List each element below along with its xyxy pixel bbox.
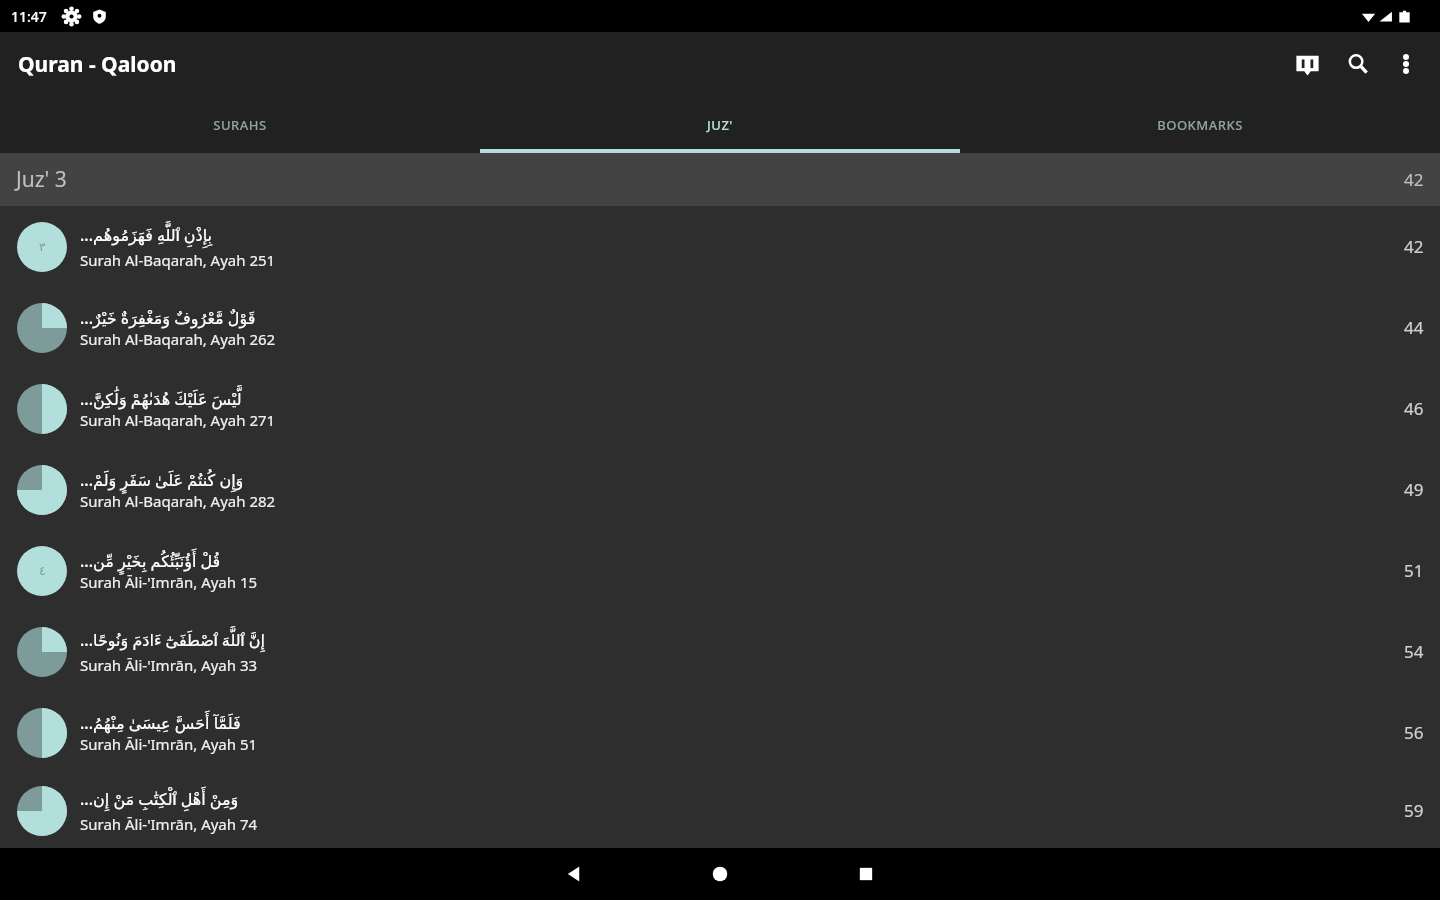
staticText: ...لَّيْسَ عَلَيْكَ هُدَىٰهُمْ وَلَٰكِنَ… [80, 388, 242, 410]
staticText: ...فَلَمَّآ أَحَسَّ عِيسَىٰ مِنْهُمُ [80, 712, 241, 734]
staticText: ...قُلْ أَؤُنَبِّئُكُم بِخَيْرٍ مِّن [80, 550, 221, 572]
button[interactable]: Search [1334, 40, 1382, 88]
staticText: JUZ' [707, 116, 733, 134]
staticText: BOOKMARKS [1157, 116, 1243, 134]
button[interactable]: ...فَلَمَّآ أَحَسَّ عِيسَىٰ مِنْهُمُ [0, 692, 1440, 773]
button[interactable]: Juz' 3 [0, 153, 1440, 206]
staticText: 46 [1404, 397, 1424, 420]
button[interactable]: ٤ [0, 530, 1440, 611]
staticText: 51 [1404, 559, 1424, 582]
staticText: ...قَوْلٌ مَّعْرُوفٌ وَمَغْفِرَةٌ خَيْرٌ [80, 307, 256, 329]
staticText: ٣ [39, 240, 46, 254]
staticText: 42 [1404, 168, 1424, 191]
button[interactable]: ٣ [0, 206, 1440, 287]
button[interactable]: JUZ' [480, 96, 960, 153]
staticText: Surah Al-Baqarah, Ayah 282 [80, 491, 276, 511]
staticText: ...إِنَّ ٱللَّهَ ٱصْطَفَىٰٓ ءَادَمَ وَنُ… [80, 629, 265, 655]
staticText: ...وَمِنْ أَهْلِ ٱلْكِتَٰبِ مَنْ إِن [80, 788, 239, 814]
button[interactable]: BOOKMARKS [960, 96, 1440, 153]
staticText: 42 [1404, 235, 1424, 258]
button[interactable]: Reading view [1281, 40, 1334, 88]
staticText: 59 [1404, 799, 1424, 822]
button[interactable]: More options [1382, 40, 1430, 88]
staticText: 49 [1404, 478, 1424, 501]
button[interactable]: ...إِنَّ ٱللَّهَ ٱصْطَفَىٰٓ ءَادَمَ وَنُ… [0, 611, 1440, 692]
staticText: Surah Al-Baqarah, Ayah 251 [80, 250, 276, 270]
staticText: 11:47 [11, 7, 47, 26]
staticText: Surah Al-Baqarah, Ayah 271 [80, 410, 276, 430]
button[interactable]: Recent apps [818, 848, 914, 900]
button[interactable]: Home [672, 848, 768, 900]
button[interactable]: ...وَمِنْ أَهْلِ ٱلْكِتَٰبِ مَنْ إِن [0, 773, 1440, 848]
button[interactable]: SURAHS [0, 96, 480, 153]
button[interactable]: ...قَوْلٌ مَّعْرُوفٌ وَمَغْفِرَةٌ خَيْرٌ [0, 287, 1440, 368]
staticText: Surah Āli-'Imrān, Ayah 51 [80, 734, 258, 754]
button[interactable]: Back [526, 848, 622, 900]
staticText: Surah Āli-'Imrān, Ayah 74 [80, 814, 258, 834]
staticText: SURAHS [213, 116, 267, 134]
staticText: Surah Āli-'Imrān, Ayah 33 [80, 655, 258, 675]
staticText: Quran - Qaloon [18, 50, 177, 79]
staticText: Juz' 3 [16, 165, 67, 194]
staticText: ...وَإِن كُنتُمْ عَلَىٰ سَفَرٍ وَلَمْ [80, 469, 244, 491]
staticText: Surah Āli-'Imrān, Ayah 15 [80, 572, 258, 592]
button[interactable]: ...وَإِن كُنتُمْ عَلَىٰ سَفَرٍ وَلَمْ [0, 449, 1440, 530]
staticText: 54 [1404, 640, 1424, 663]
staticText: 56 [1404, 721, 1424, 744]
staticText: 44 [1404, 316, 1424, 339]
staticText: ٤ [39, 564, 46, 578]
staticText: ...بِإِذْنِ ٱللَّهِ فَهَزَمُوهُم [80, 224, 213, 250]
staticText: Surah Al-Baqarah, Ayah 262 [80, 329, 276, 349]
button[interactable]: ...لَّيْسَ عَلَيْكَ هُدَىٰهُمْ وَلَٰكِنَ… [0, 368, 1440, 449]
